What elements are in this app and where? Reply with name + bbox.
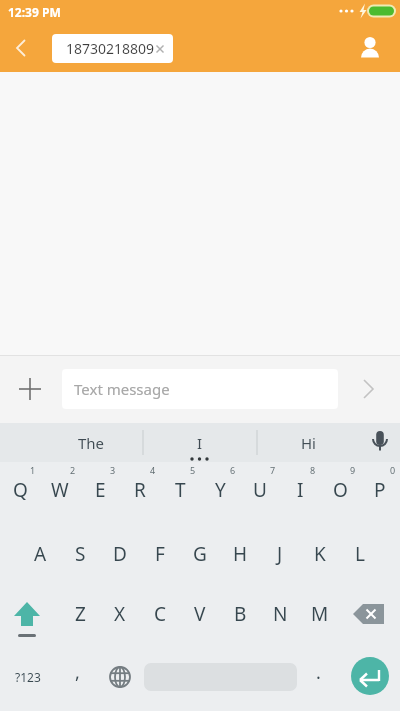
button[interactable]: P [360,462,400,524]
staticText: I [197,433,203,453]
button[interactable]: U [240,462,280,524]
staticText: F [155,541,165,567]
staticText: 2 [70,464,76,476]
button[interactable]: O [320,462,360,524]
button[interactable]: V [180,586,220,648]
staticText: 18730218809 [66,39,155,58]
button[interactable] [100,648,140,711]
button[interactable]: N [260,586,300,648]
button[interactable]: K [300,524,340,586]
button[interactable]: A [20,524,60,586]
button[interactable] [350,28,390,68]
button[interactable]: Y [200,462,240,524]
staticText: Y [215,477,226,503]
button[interactable]: E [80,462,120,524]
staticText: 0 [390,464,396,476]
staticText: R [134,477,146,503]
staticText: D [113,541,127,567]
button[interactable] [0,26,44,70]
button[interactable]: G [180,524,220,586]
button[interactable] [8,367,52,411]
button[interactable]: W [40,462,80,524]
button[interactable]: , [55,648,100,711]
staticText: T [175,477,186,503]
staticText: 7 [270,464,276,476]
button[interactable]: M [300,586,340,648]
staticText: 9 [350,464,356,476]
button[interactable]: 18730218809 [52,34,173,63]
staticText: N [273,601,288,627]
staticText: P [374,477,386,503]
button[interactable]: S [60,524,100,586]
staticText: J [277,541,283,567]
staticText: W [51,477,69,503]
staticText: 5 [190,464,196,476]
staticText: 12:39 PM [8,4,61,20]
staticText: S [75,541,86,567]
staticText: I [297,477,304,503]
staticText: U [253,477,267,503]
staticText: G [193,541,207,567]
button[interactable]: I [280,462,320,524]
button[interactable]: R [120,462,160,524]
staticText: L [355,541,365,567]
button[interactable] [340,586,400,648]
staticText: Text message [74,379,170,399]
staticText: H [233,541,248,567]
button[interactable]: T [160,462,200,524]
staticText: 4 [150,464,156,476]
button[interactable]: I [143,423,257,462]
staticText: 8 [310,464,316,476]
staticText: ?123 [15,669,41,685]
staticText: K [314,541,326,567]
button[interactable]: ?123 [0,648,55,711]
button[interactable] [360,423,400,462]
staticText: Z [75,601,86,627]
button[interactable]: Z [60,586,100,648]
button[interactable] [351,657,389,695]
button[interactable]: Text message [62,369,338,409]
staticText: A [34,541,47,567]
staticText: Hi [301,433,316,453]
staticText: E [95,477,106,503]
staticText: 3 [110,464,116,476]
staticText: M [311,601,329,627]
button[interactable]: X [100,586,140,648]
button[interactable]: . [297,648,339,711]
button[interactable]: J [260,524,300,586]
staticText: Q [13,477,28,503]
button[interactable]: Hi [257,423,360,462]
button[interactable] [0,586,60,648]
staticText: . [316,660,321,685]
button[interactable]: L [340,524,380,586]
staticText: B [234,601,247,627]
staticText: 6 [230,464,236,476]
button[interactable] [350,371,386,407]
button[interactable]: D [100,524,140,586]
button[interactable]: Q [0,462,40,524]
staticText: O [333,477,348,503]
button[interactable]: The [40,423,143,462]
staticText: The [78,433,105,453]
button[interactable]: B [220,586,260,648]
button[interactable]: H [220,524,260,586]
staticText: V [194,601,206,627]
button[interactable]: F [140,524,180,586]
staticText: X [114,601,126,627]
staticText: , [75,660,80,685]
staticText: C [154,601,167,627]
button[interactable]: C [140,586,180,648]
staticText: 1 [30,464,36,476]
